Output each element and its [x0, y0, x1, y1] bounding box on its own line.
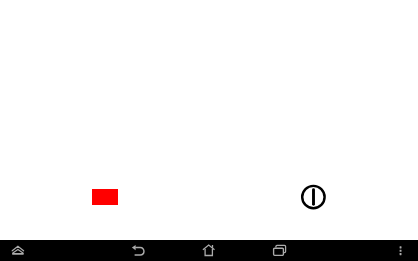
button[interactable]: Back: [125, 240, 153, 261]
button[interactable]: Up: [4, 240, 32, 261]
button[interactable]: Recent apps: [266, 240, 294, 261]
button[interactable]: More options: [387, 240, 415, 261]
button[interactable]: Power: [299, 183, 328, 212]
button[interactable]: Home: [195, 240, 223, 261]
